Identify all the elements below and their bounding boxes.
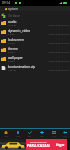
staticText: Seç [28,135,32,138]
button[interactable]: dynamic_video [0,29,70,38]
staticText: 2 ADET [8,60,15,63]
button[interactable]: Araç [48,129,60,139]
button[interactable]: bootanimation.zip [0,65,70,74]
staticText: Çıkış [63,135,68,138]
button[interactable]: wallpaper [0,56,70,65]
staticText: Yeni [40,135,44,138]
staticText: 2023-02-28 09:14:05 [49,42,69,45]
staticText: dynamic_video [8,29,31,33]
staticText: 2023-02-28 09:14:05 [49,24,69,27]
staticText: 09:14 [2,1,11,5]
button[interactable]: Çıkış [60,129,70,139]
staticText: 5 ADET [8,42,15,45]
button[interactable]: theme [0,47,70,56]
staticText: 2023-02-28 09:14:05 [49,60,69,63]
staticText: 2023-02-28 09:14:05 [49,69,69,72]
staticText: wallpaper [8,56,23,60]
button[interactable]: system [0,6,70,11]
button[interactable]: audio [0,20,70,29]
staticText: 8 ADET [8,51,15,54]
staticText: theme [8,47,18,51]
staticText: 4.38 MB [8,69,16,72]
staticText: bootanimation.zip [8,65,36,69]
button[interactable]: Bilgi için hemen tıkla [0,139,70,150]
staticText: Araç [52,135,56,138]
staticText: 2023-02-28 09:14:05 [49,33,69,36]
staticText: 10 ADET [8,24,17,27]
button[interactable]: Yeni [36,129,48,139]
staticText: PARA KAZAN [27,143,50,148]
staticText: itgo [56,142,65,148]
staticText: audio [8,20,17,24]
button[interactable]: Üst klasör [0,11,70,20]
staticText: 3 ADET [8,33,15,36]
button[interactable]: Yerel [0,129,12,139]
button[interactable]: Aygıt [12,129,24,139]
staticText: system [8,7,18,11]
staticText: Bilgi için hemen tıkla [30,141,47,143]
button[interactable]: Seç [24,129,36,139]
staticText: 2023-02-28 09:14:05 [49,51,69,54]
staticText: Üst klasör [8,14,21,18]
staticText: Yerel [4,135,9,138]
staticText: lockscreen [8,38,24,42]
button[interactable]: lockscreen [0,38,70,47]
staticText: Aygıt [16,135,21,138]
